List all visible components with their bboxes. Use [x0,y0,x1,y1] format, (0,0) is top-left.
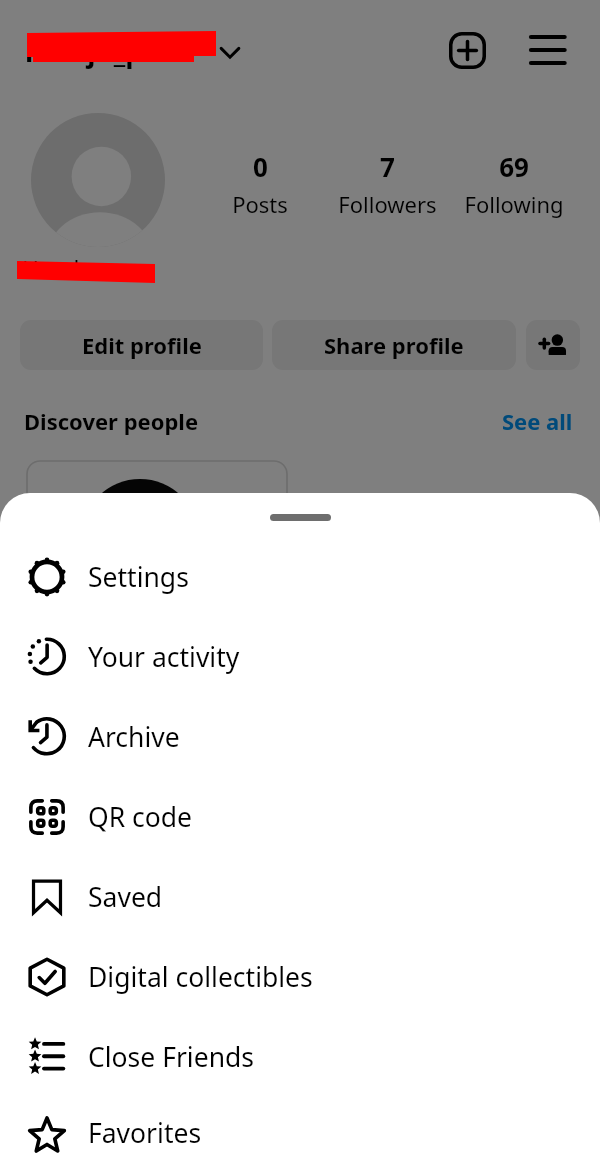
button[interactable]: 0 [190,149,330,219]
button[interactable]: Digital collectibles [0,937,600,1017]
staticText: Following [464,189,564,219]
button[interactable]: Menu [523,26,571,74]
button[interactable]: QR code [0,777,600,857]
staticText: Settings [88,559,189,595]
staticText: Favorites [88,1115,202,1151]
button[interactable]: Edit profile [20,320,263,370]
staticText: 69 [499,149,529,184]
button[interactable]: See all [502,406,573,436]
staticText: hemju_p [25,32,143,70]
button[interactable]: Create [443,26,491,74]
staticText: 0 [253,149,268,184]
staticText: Hemkumar [22,253,144,284]
staticText: Your activity [88,639,240,675]
button[interactable]: Share profile [272,320,516,370]
staticText: Discover people [24,406,199,436]
button[interactable] [217,39,243,65]
staticText: Edit profile [82,330,202,360]
button[interactable]: Discover people [526,320,580,370]
staticText: Close Friends [88,1039,254,1075]
staticText: Posts [232,189,288,219]
staticText: Digital collectibles [88,959,313,995]
button[interactable]: Saved [0,857,600,937]
button[interactable]: Archive [0,697,600,777]
button[interactable]: Your activity [0,617,600,697]
button[interactable]: Close Friends [0,1017,600,1097]
button[interactable]: Favorites [0,1097,600,1169]
button[interactable]: 7 [317,149,457,219]
button[interactable]: 69 [444,149,584,219]
staticText: Archive [88,719,180,755]
staticText: 7 [380,149,395,184]
staticText: Share profile [324,330,464,360]
staticText: Followers [338,189,437,219]
button[interactable] [31,113,165,247]
staticText: Saved [88,879,163,915]
button[interactable]: Settings [0,537,600,617]
staticText: QR code [88,799,193,835]
